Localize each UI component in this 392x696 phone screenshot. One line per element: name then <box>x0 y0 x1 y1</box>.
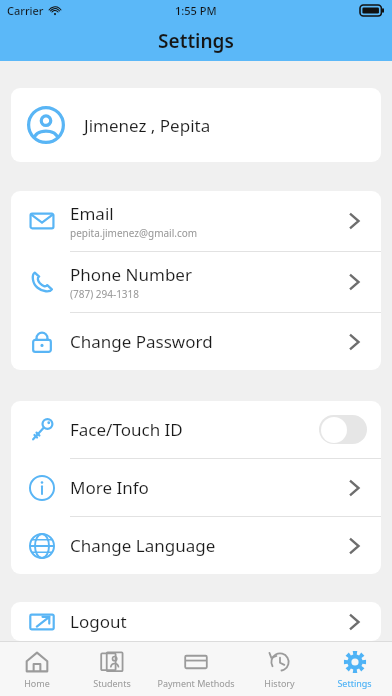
staticText: (787) 294-1318 <box>70 287 140 301</box>
button[interactable]: Logout <box>11 602 381 641</box>
staticText: Carrier <box>7 3 44 18</box>
staticText: Change Password <box>70 330 213 353</box>
staticText: Payment Methods <box>157 677 235 689</box>
staticText: pepita.jimenez@gmail.com <box>70 226 198 240</box>
button[interactable]: Face/Touch ID <box>11 401 381 458</box>
staticText: Students <box>93 677 131 689</box>
button[interactable]: Face/Touch ID toggle <box>319 415 367 444</box>
staticText: Email <box>70 202 114 225</box>
button[interactable]: Email <box>11 191 381 251</box>
button[interactable]: Settings <box>317 642 392 696</box>
staticText: Home <box>24 677 50 689</box>
button[interactable]: Payment Methods <box>149 642 242 696</box>
staticText: More Info <box>70 476 149 499</box>
button[interactable]: Phone Number <box>11 252 381 312</box>
button[interactable]: Change Language <box>11 517 381 574</box>
staticText: Phone Number <box>70 263 192 286</box>
staticText: History <box>264 677 295 689</box>
staticText: Change Language <box>70 534 216 557</box>
button[interactable]: History <box>242 642 317 696</box>
button[interactable]: Home <box>0 642 74 696</box>
button[interactable]: Change Password <box>11 313 381 370</box>
staticText: Jimenez , Pepita <box>84 114 211 137</box>
staticText: Face/Touch ID <box>70 418 183 441</box>
button[interactable]: Students <box>74 642 149 696</box>
staticText: Settings <box>337 677 372 689</box>
staticText: Logout <box>70 610 350 633</box>
button[interactable]: Jimenez , Pepita <box>11 88 381 162</box>
button[interactable]: More Info <box>11 459 381 516</box>
staticText: 1:55 PM <box>175 3 217 18</box>
staticText: Settings <box>158 28 234 54</box>
